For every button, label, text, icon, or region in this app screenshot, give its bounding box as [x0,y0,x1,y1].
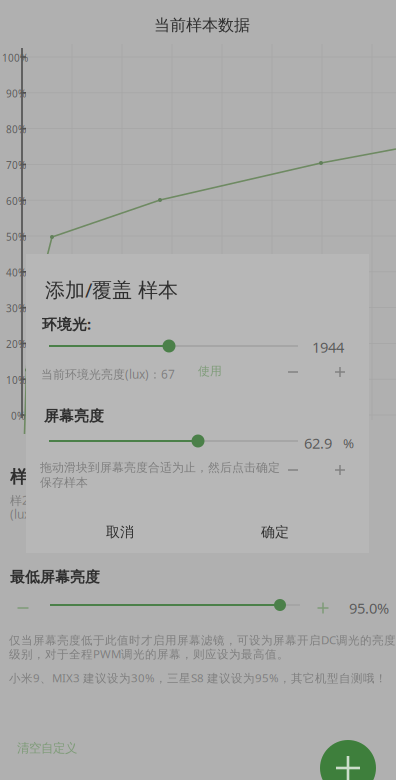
staticText: 环境光: [42,314,91,334]
staticText: 确定 [261,523,289,541]
button[interactable]: Add sample [320,740,376,780]
staticText: 0% [11,409,25,423]
button[interactable]: Increase minimum brightness [310,595,336,621]
staticText: 添加/覆盖 样本 [45,276,178,303]
button[interactable]: 使用 [196,362,224,380]
staticText: 当前样本数据 [154,15,250,35]
staticText: 95.0% [349,598,389,618]
staticText: 最低屏幕亮度 [10,568,100,586]
button[interactable]: Increase ambient light [328,360,352,384]
button[interactable]: Decrease brightness [281,458,305,482]
button[interactable]: 清空自定义 [15,738,79,758]
staticText: 当前环境光亮度(lux)：67 [41,366,175,382]
staticText: 样2 [10,492,29,508]
button[interactable]: 确定 [237,514,313,550]
staticText: (lux [10,506,30,522]
staticText: 70% [6,158,26,172]
staticText: 保存样本 [40,475,88,490]
button[interactable]: Decrease ambient light [281,360,305,384]
button[interactable]: 取消 [82,514,158,550]
staticText: 100% [2,51,28,65]
staticText: 级别，对于全程PWM调光的屏幕，则应设为最高值。 [9,646,289,662]
staticText: 仅当屏幕亮度低于此值时才启用屏幕滤镜，可设为屏幕开启DC调光的亮度 [9,632,396,648]
staticText: 40% [6,266,26,279]
staticText: 清空自定义 [17,740,77,756]
staticText: 80% [6,123,26,136]
staticText: 使用 [198,363,222,378]
staticText: 1944 [312,337,344,357]
staticText: 小米9、MIX3 建议设为30%，三星S8 建议设为95%，其它机型自测哦！ [9,670,387,686]
button[interactable]: Decrease minimum brightness [10,595,36,621]
button[interactable]: Increase brightness [328,458,352,482]
staticText: 20% [6,337,26,351]
staticText: 60% [6,194,26,208]
staticText: 取消 [106,523,134,541]
staticText: 样本 [10,466,44,488]
staticText: 屏幕亮度 [44,407,104,425]
staticText: 30% [6,302,26,315]
staticText: 10% [6,373,26,387]
staticText: % [343,434,354,452]
staticText: 62.9 [304,433,332,453]
staticText: 50% [6,230,26,244]
staticText: 90% [6,87,26,100]
staticText: 拖动滑块到屏幕亮度合适为止，然后点击确定 [40,460,280,475]
